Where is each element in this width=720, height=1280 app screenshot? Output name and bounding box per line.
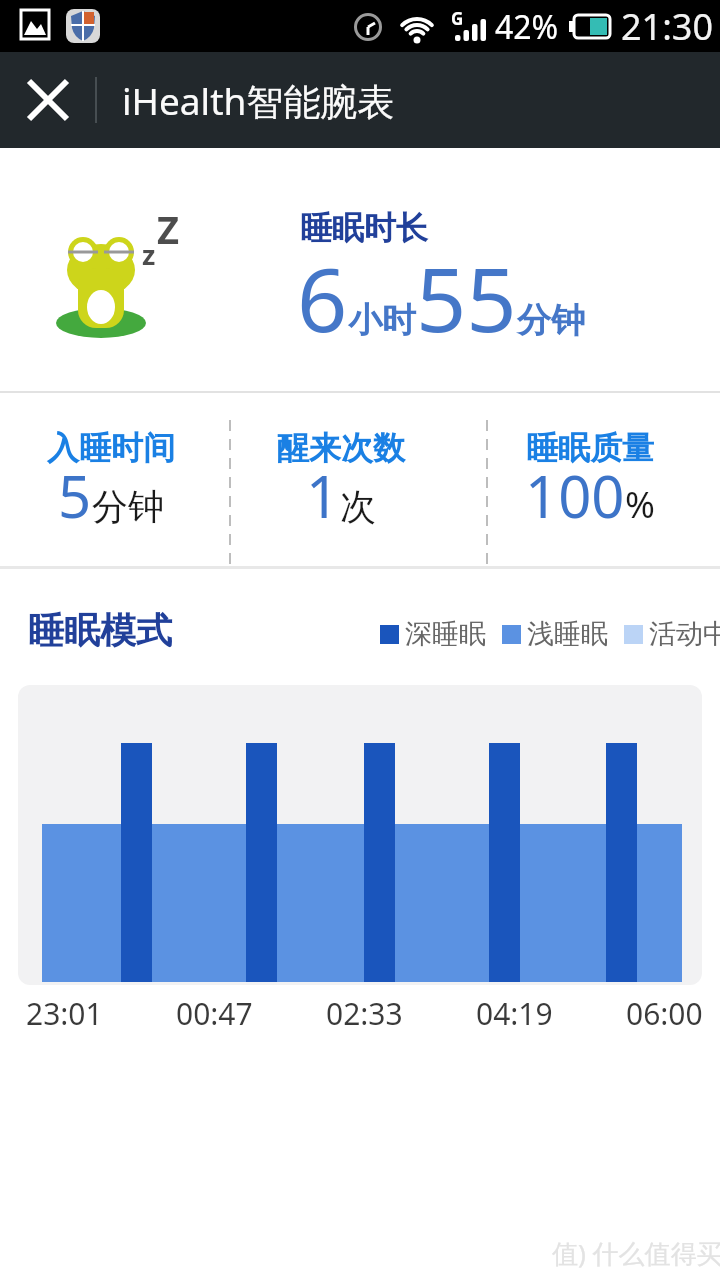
staticText: 小时 — [348, 299, 416, 342]
button[interactable] — [0, 52, 96, 148]
staticText: 睡眠模式 — [28, 608, 172, 653]
staticText: 5 — [58, 456, 92, 535]
staticText: 次 — [340, 484, 376, 529]
staticText: 6 — [297, 238, 348, 358]
staticText: 04:19 — [476, 993, 553, 1034]
staticText: 1 — [306, 456, 340, 535]
staticText: 02:33 — [326, 993, 403, 1034]
staticText: 23:01 — [26, 993, 103, 1034]
staticText: 分钟 — [92, 484, 164, 529]
staticText: 深睡眠 — [405, 617, 486, 651]
staticText: 浅睡眠 — [527, 617, 608, 651]
staticText: 100 — [525, 456, 625, 535]
staticText: 睡眠质量 — [526, 428, 654, 468]
staticText: 06:00 — [626, 993, 703, 1034]
staticText: z — [142, 236, 156, 273]
button[interactable]: 活动中 — [624, 617, 720, 651]
staticText: 55 — [416, 238, 517, 358]
staticText: 入睡时间 — [47, 428, 175, 468]
button[interactable]: 浅睡眠 — [502, 617, 608, 651]
button[interactable]: 值) 什么值得买 — [552, 1235, 720, 1271]
staticText: iHealth智能腕表 — [122, 75, 395, 126]
staticText: % — [625, 480, 655, 529]
staticText: 42% — [495, 5, 559, 49]
button[interactable]: 深睡眠 — [380, 617, 486, 651]
staticText: 睡眠时长 — [300, 208, 428, 248]
staticText: Z — [157, 203, 180, 255]
staticText: 00:47 — [176, 993, 253, 1034]
staticText: 醒来次数 — [277, 428, 405, 468]
staticText: 21:30 — [621, 2, 714, 51]
staticText: 分钟 — [517, 299, 585, 342]
staticText: G — [451, 7, 464, 30]
staticText: 活动中 — [649, 617, 720, 651]
